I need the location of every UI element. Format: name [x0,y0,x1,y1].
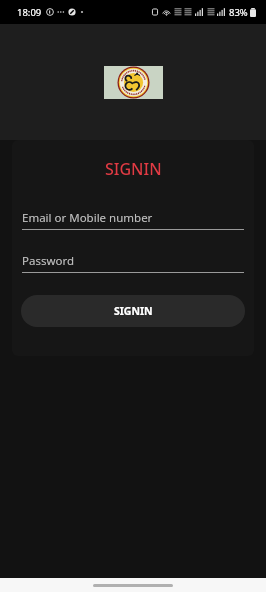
staticText: 83% [229,6,248,19]
button[interactable]: Password [22,252,244,273]
staticText: SIGNIN [105,158,162,180]
other: Home gesture bar [93,584,173,587]
staticText: 18:09 [17,6,42,19]
staticText: Email or Mobile number [22,210,153,226]
button[interactable]: SIGNIN [21,295,245,327]
staticText: Password [22,253,75,269]
staticText: SIGNIN [114,304,153,318]
button[interactable]: Email or Mobile number [22,209,244,230]
